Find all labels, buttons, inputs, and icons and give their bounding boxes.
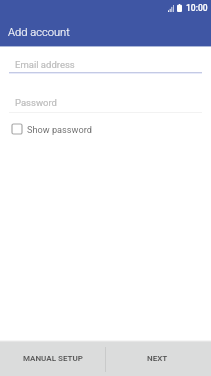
staticText: Add account [8,26,70,39]
button[interactable]: MANUAL SETUP [0,342,105,376]
staticText: NEXT [147,354,168,363]
staticText: Password [15,97,57,108]
staticText: Show password [27,124,92,135]
button[interactable]: Show password [10,120,92,137]
button[interactable]: NEXT [106,342,211,376]
staticText: Email address [15,59,75,70]
staticText: MANUAL SETUP [23,354,83,363]
staticText: 10:00 [186,3,208,13]
